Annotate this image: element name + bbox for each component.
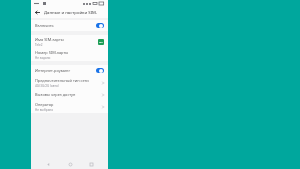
staticText: Оператор	[35, 102, 54, 107]
staticText: Не задано	[35, 56, 51, 60]
staticText: Интернет-роуминг	[35, 68, 96, 73]
staticText: Имя SIM-карты	[35, 37, 64, 42]
staticText: Номер SIM-карты	[35, 50, 69, 55]
button[interactable]: Home	[65, 159, 75, 169]
button[interactable]: Back	[31, 7, 108, 18]
staticText: 4G/3G/2G (авто)	[35, 84, 59, 88]
button[interactable]: Имя SIM-карты	[31, 35, 108, 48]
button[interactable]: Back	[34, 9, 41, 16]
button[interactable]: Recent apps	[86, 159, 96, 169]
button[interactable]: Вызовы через доступ	[31, 89, 108, 100]
button[interactable]: Включить	[31, 20, 108, 31]
button[interactable]: Номер SIM-карты	[31, 48, 108, 61]
staticText: Tele2	[35, 43, 43, 47]
staticText: Не выбрано	[35, 108, 54, 112]
staticText: Включить	[35, 23, 96, 28]
button[interactable]: Интернет-роуминг	[31, 65, 108, 76]
staticText: Предпочтительный тип сети	[35, 78, 89, 83]
staticText: Данные и настройки SIM-карты	[44, 10, 105, 16]
staticText: sim	[99, 41, 103, 44]
staticText: Вызовы через доступ	[35, 92, 76, 97]
button[interactable]: Оператор	[31, 100, 108, 113]
button[interactable]: Back	[43, 159, 53, 169]
button[interactable]: Предпочтительный тип сети	[31, 76, 108, 89]
